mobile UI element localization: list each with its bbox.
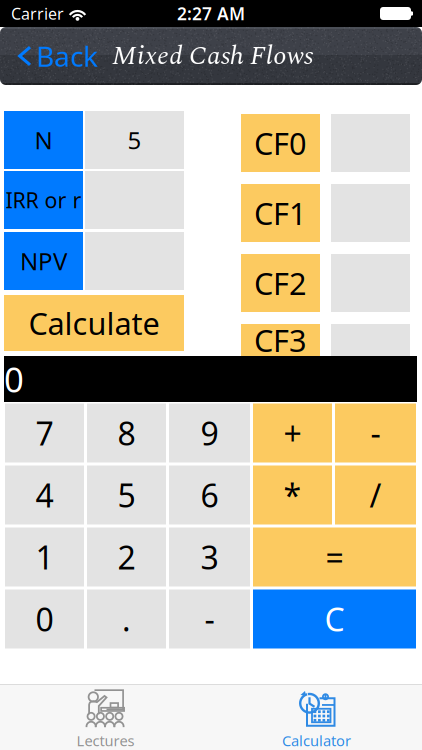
button[interactable]: CF1 — [241, 184, 320, 242]
staticText: Mixed Cash Flows — [112, 36, 313, 76]
button[interactable]: IRR or r — [4, 171, 83, 229]
staticText: Back — [36, 37, 98, 75]
button[interactable]: Lectures — [0, 685, 211, 750]
staticText: / — [369, 474, 381, 516]
button[interactable]: 2 — [87, 527, 166, 586]
staticText: . — [122, 598, 131, 640]
button[interactable]: Back — [0, 27, 106, 85]
staticText: CF1 — [254, 193, 307, 233]
button[interactable]: . — [87, 589, 166, 648]
button[interactable]: N — [4, 111, 83, 169]
button[interactable]: 8 — [87, 403, 166, 462]
staticText: 7 — [35, 412, 53, 454]
button[interactable]: / — [335, 465, 416, 524]
button[interactable]: CF3 — [241, 324, 320, 356]
staticText: 8 — [117, 412, 135, 454]
staticText: 1 — [35, 536, 53, 578]
staticText: CF3 — [254, 320, 307, 360]
staticText: 6 — [200, 474, 218, 516]
button[interactable]: * — [253, 465, 332, 524]
button[interactable]: C — [253, 589, 416, 648]
button[interactable]: NPV — [4, 232, 83, 290]
button[interactable]: 5 — [87, 465, 166, 524]
staticText: CF2 — [254, 263, 307, 303]
staticText: - — [204, 598, 214, 640]
button[interactable]: 1 — [5, 527, 84, 586]
button[interactable]: 5 — [85, 111, 184, 169]
button[interactable]: CF2 — [241, 254, 320, 312]
staticText: 0 — [35, 598, 53, 640]
staticText: NPV — [20, 245, 67, 277]
button[interactable]: Calculate — [4, 295, 184, 351]
staticText: Calculate — [28, 303, 159, 343]
staticText: + — [283, 412, 301, 454]
staticText: 2:27 AM — [177, 2, 245, 25]
staticText: * — [283, 474, 301, 516]
button[interactable]: 7 — [5, 403, 84, 462]
staticText: 0 — [4, 356, 24, 402]
staticText: Lectures — [76, 731, 134, 750]
button[interactable]: 4 — [5, 465, 84, 524]
staticText: CF0 — [254, 123, 307, 163]
staticText: = — [325, 536, 343, 578]
button[interactable]: Calculator — [211, 685, 422, 750]
staticText: - — [370, 412, 380, 454]
staticText: Carrier — [11, 3, 64, 24]
button[interactable]: 0 — [5, 589, 84, 648]
button[interactable]: - — [169, 589, 250, 648]
button[interactable]: 3 — [169, 527, 250, 586]
staticText: 5 — [127, 124, 141, 156]
staticText: 4 — [35, 474, 53, 516]
button[interactable]: - — [335, 403, 416, 462]
staticText: 2 — [117, 536, 135, 578]
staticText: Calculator — [282, 731, 351, 750]
staticText: 9 — [200, 412, 218, 454]
staticText: 5 — [117, 474, 135, 516]
button[interactable]: 9 — [169, 403, 250, 462]
button[interactable]: + — [253, 403, 332, 462]
staticText: IRR or r — [5, 186, 81, 214]
staticText: C — [324, 598, 344, 640]
button[interactable]: = — [253, 527, 416, 586]
button[interactable]: 6 — [169, 465, 250, 524]
staticText: 3 — [200, 536, 218, 578]
button[interactable]: CF0 — [241, 114, 320, 172]
staticText: N — [34, 124, 52, 156]
